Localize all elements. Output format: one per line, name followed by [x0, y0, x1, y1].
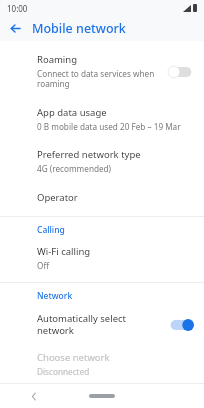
button[interactable]: Choose network	[0, 349, 204, 381]
staticText: Disconnected	[37, 366, 90, 377]
button[interactable]: Preferred network type	[0, 144, 204, 178]
button[interactable]: App data usage	[0, 102, 204, 136]
button[interactable]: Operator	[0, 186, 204, 209]
staticText: Wi-Fi calling	[37, 245, 91, 258]
staticText: Network	[37, 290, 73, 302]
staticText: 10:00	[7, 3, 28, 14]
staticText: Calling	[37, 224, 65, 236]
staticText: Operator	[37, 191, 78, 204]
staticText: Choose network	[37, 351, 110, 364]
button[interactable]: Home	[87, 387, 117, 405]
button[interactable]: Automatically select network	[0, 309, 204, 343]
button[interactable]: Wi-Fi calling	[0, 243, 204, 275]
staticText: Off	[37, 260, 50, 271]
button[interactable]: Roaming	[0, 49, 204, 94]
button[interactable]: Back	[25, 387, 43, 405]
staticText: App data usage	[37, 106, 107, 119]
staticText: 4G (recommended)	[37, 163, 112, 174]
staticText: Connect to data services when roaming	[37, 68, 155, 90]
staticText: Roaming	[37, 53, 78, 66]
staticText: Preferred network type	[37, 148, 141, 161]
button[interactable]: Back	[6, 19, 25, 38]
staticText: 0 B mobile data used 20 Feb – 19 Mar	[37, 121, 181, 132]
staticText: Mobile network	[32, 20, 126, 37]
staticText: Automatically select network	[37, 312, 162, 337]
